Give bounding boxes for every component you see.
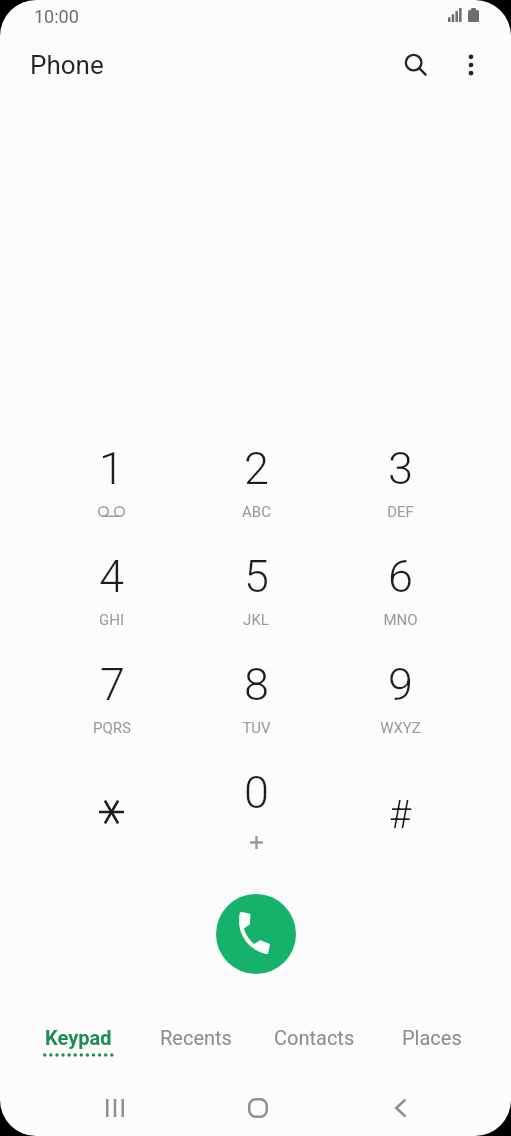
button[interactable]: Places: [373, 1026, 491, 1072]
button[interactable]: Keypad: [20, 1026, 137, 1072]
button[interactable]: 7: [39, 658, 184, 766]
staticText: 5: [244, 550, 269, 603]
button[interactable]: 9: [328, 658, 472, 766]
staticText: WXYZ: [380, 719, 421, 737]
staticText: 2: [244, 442, 269, 495]
staticText: JKL: [243, 611, 269, 629]
staticText: 10:00: [34, 6, 79, 27]
staticText: GHI: [99, 611, 124, 629]
button[interactable]: Recents: [137, 1026, 255, 1072]
button[interactable]: Home: [229, 1087, 286, 1129]
button[interactable]: 0: [184, 766, 328, 874]
staticText: 4: [99, 550, 124, 603]
staticText: Contacts: [274, 1026, 355, 1049]
button[interactable]: Search: [392, 41, 440, 89]
staticText: 9: [388, 658, 413, 711]
staticText: 6: [388, 550, 413, 603]
staticText: Places: [402, 1026, 462, 1049]
staticText: PQRS: [93, 719, 131, 737]
button[interactable]: Recent apps: [86, 1087, 143, 1129]
button[interactable]: 8: [184, 658, 328, 766]
staticText: DEF: [387, 503, 414, 521]
button[interactable]: Call: [216, 894, 296, 974]
button[interactable]: Star: [39, 766, 184, 874]
staticText: Phone: [30, 50, 104, 80]
button[interactable]: 5: [184, 550, 328, 658]
staticText: #: [389, 793, 412, 838]
button[interactable]: 1: [39, 442, 184, 550]
staticText: 3: [388, 442, 413, 495]
staticText: 8: [244, 658, 269, 711]
staticText: 0: [244, 766, 269, 819]
staticText: TUV: [242, 719, 271, 737]
staticText: MNO: [383, 611, 418, 629]
staticText: Keypad: [45, 1026, 112, 1049]
button[interactable]: 3: [328, 442, 472, 550]
button[interactable]: 2: [184, 442, 328, 550]
button[interactable]: 6: [328, 550, 472, 658]
button[interactable]: Back: [372, 1087, 429, 1129]
button[interactable]: More options: [447, 41, 495, 89]
staticText: ABC: [242, 503, 271, 521]
staticText: 1: [99, 442, 124, 495]
button[interactable]: Pound: [328, 766, 472, 874]
staticText: 7: [100, 658, 125, 711]
staticText: Recents: [160, 1026, 232, 1049]
button[interactable]: Contacts: [255, 1026, 373, 1072]
button[interactable]: 4: [39, 550, 184, 658]
